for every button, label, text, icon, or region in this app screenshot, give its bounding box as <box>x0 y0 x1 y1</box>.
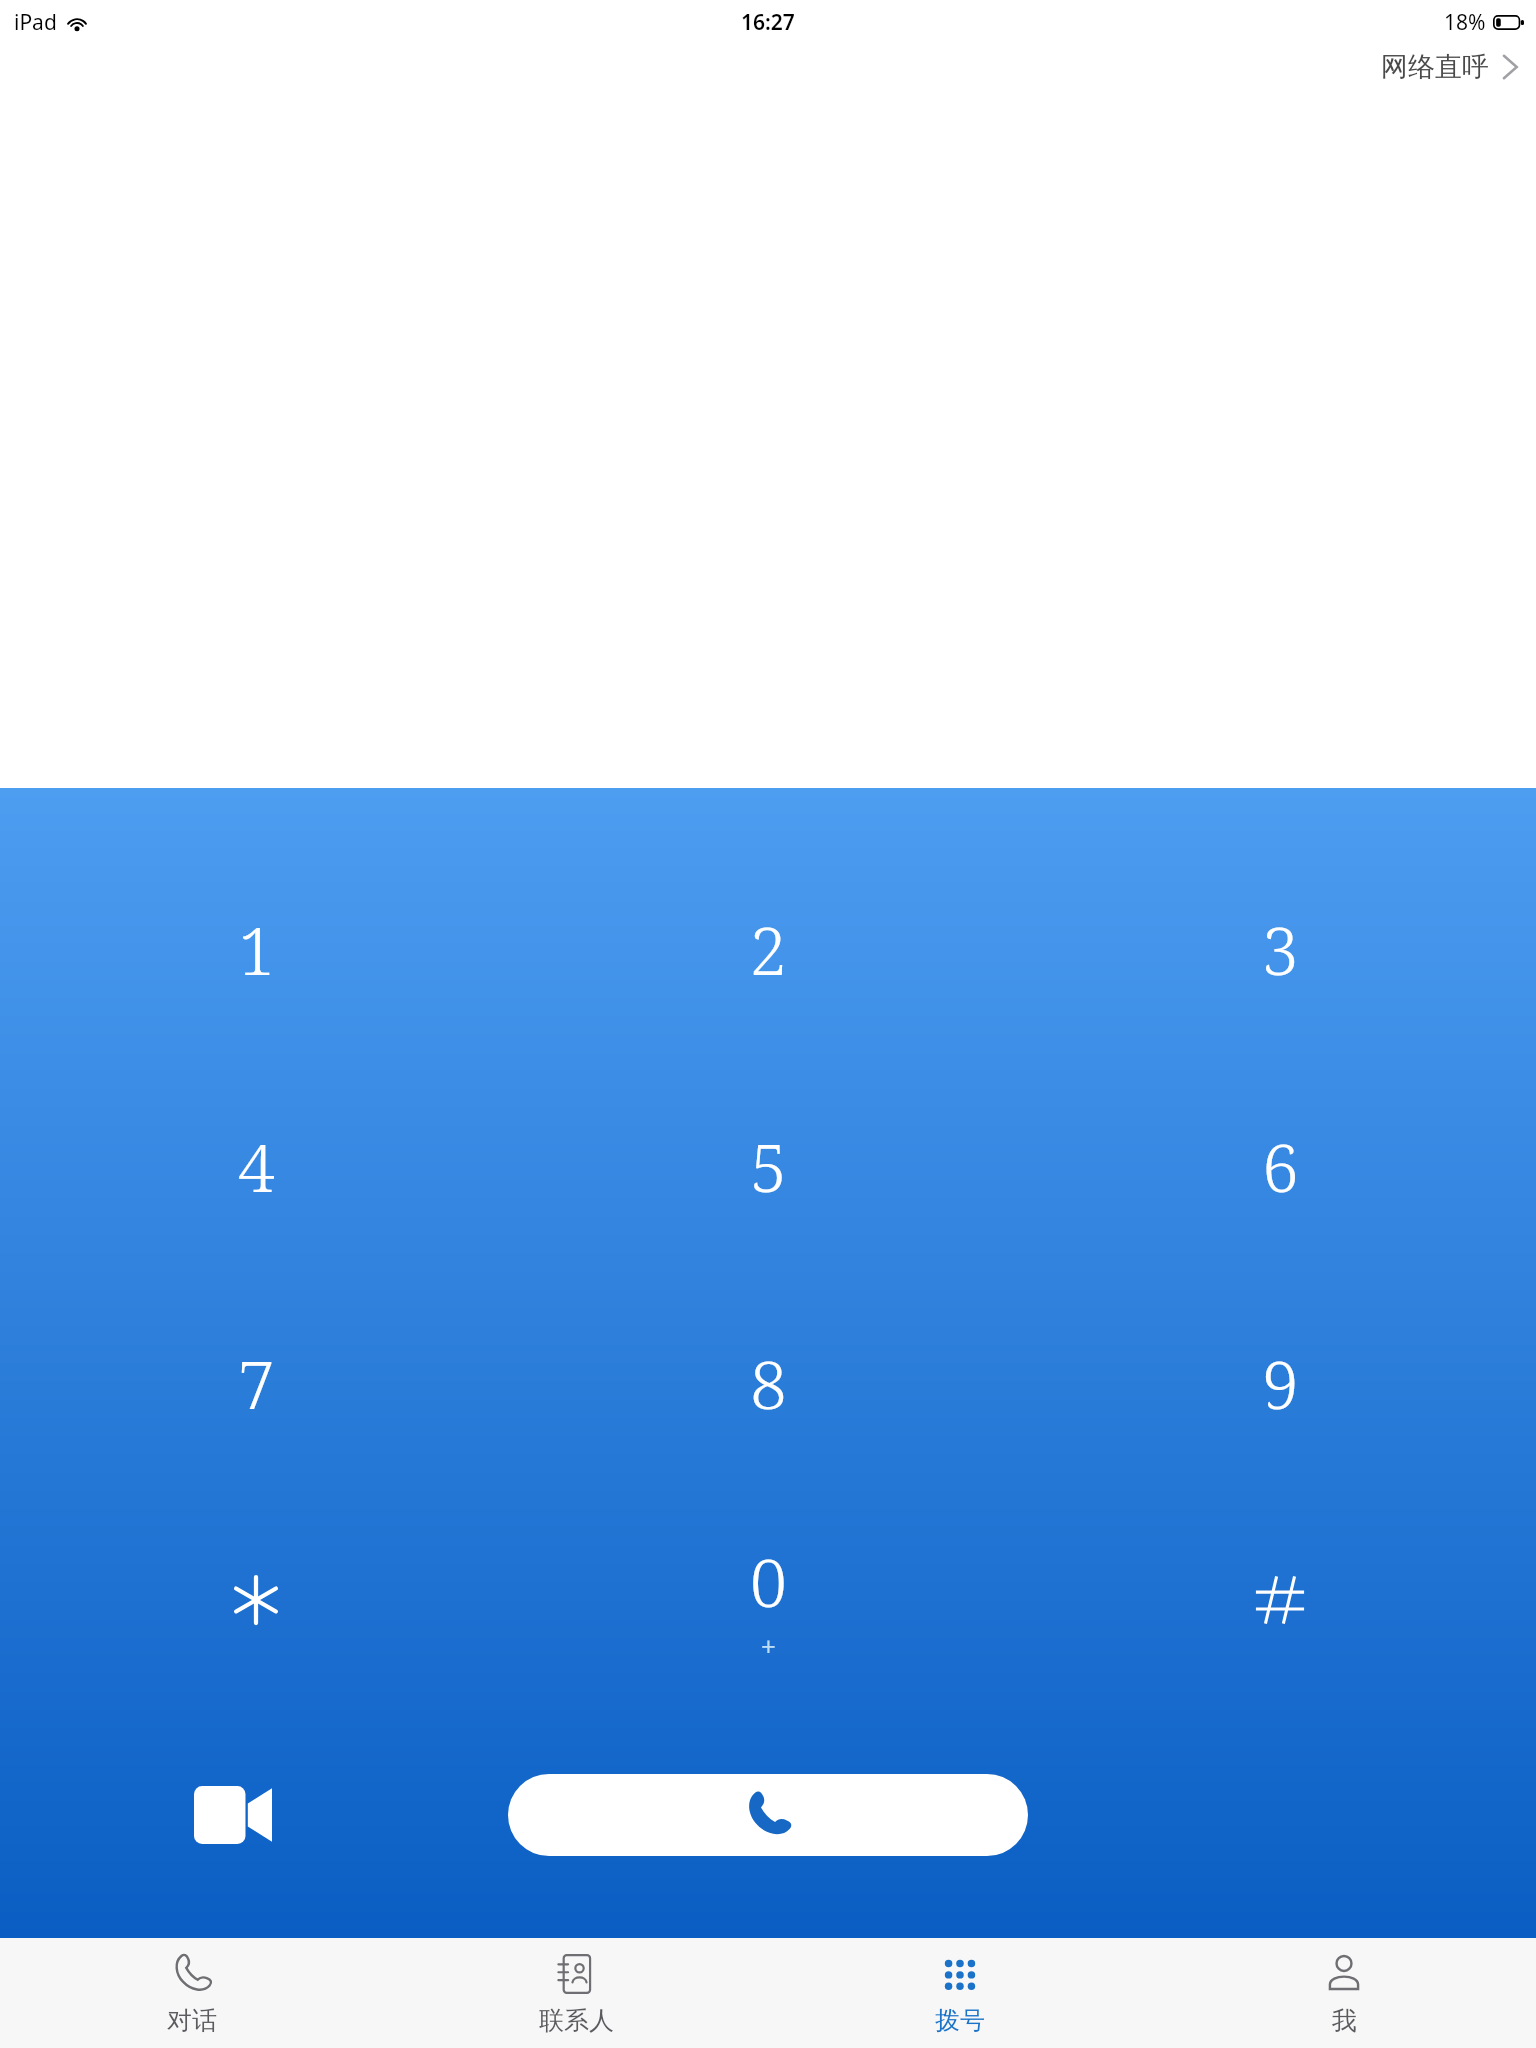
staticText: 网络直呼 <box>1381 50 1489 84</box>
button[interactable]: 2 <box>512 840 1024 1057</box>
button[interactable]: 8 <box>512 1274 1024 1491</box>
staticText: + <box>761 1628 776 1663</box>
button[interactable]: 4 <box>0 1057 512 1274</box>
button[interactable]: 0 <box>512 1491 1024 1708</box>
button[interactable]: 7 <box>0 1274 512 1491</box>
staticText: 16:27 <box>741 8 795 37</box>
staticText: iPad <box>14 8 57 37</box>
button[interactable]: 9 <box>1024 1274 1536 1491</box>
staticText: 4 <box>238 1121 275 1211</box>
staticText: 5 <box>750 1121 787 1211</box>
staticText: 3 <box>1262 904 1299 994</box>
button[interactable]: 对话 <box>0 1938 384 2048</box>
button[interactable]: 联系人 <box>384 1938 768 2048</box>
staticText: 6 <box>1262 1121 1299 1211</box>
staticText: 我 <box>1332 2005 1357 2036</box>
button[interactable]: 5 <box>512 1057 1024 1274</box>
staticText: 拨号 <box>935 2005 985 2036</box>
button[interactable] <box>0 1491 512 1708</box>
button[interactable]: Call <box>508 1774 1028 1856</box>
button[interactable]: 3 <box>1024 840 1536 1057</box>
staticText: 7 <box>238 1338 275 1428</box>
button[interactable]: 我 <box>1152 1938 1536 2048</box>
staticText: 联系人 <box>539 2005 614 2036</box>
staticText: 9 <box>1262 1338 1299 1428</box>
button[interactable]: 拨号 <box>768 1938 1152 2048</box>
button[interactable]: Video call <box>190 1778 276 1852</box>
button[interactable]: 6 <box>1024 1057 1536 1274</box>
button[interactable] <box>1024 1491 1536 1708</box>
button[interactable]: 网络直呼 <box>1363 46 1536 88</box>
staticText: 对话 <box>167 2005 217 2036</box>
staticText: 1 <box>238 904 275 994</box>
staticText: 8 <box>750 1338 787 1428</box>
button[interactable]: 1 <box>0 840 512 1057</box>
staticText: 0 <box>750 1536 787 1626</box>
staticText: 2 <box>750 904 787 994</box>
staticText: 18% <box>1444 8 1486 37</box>
